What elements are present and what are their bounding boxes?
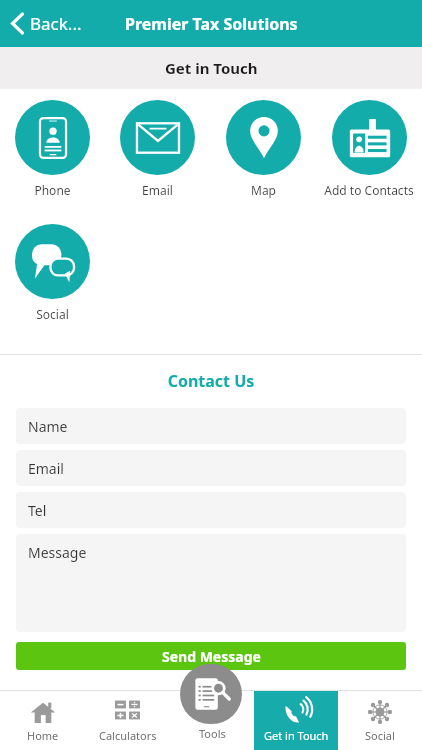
staticText: Map	[251, 182, 276, 198]
button[interactable]: Message	[16, 534, 406, 632]
button[interactable]: Get in Touch	[254, 691, 338, 750]
button[interactable]: Home	[0, 691, 85, 750]
button[interactable]: Social	[338, 691, 422, 750]
staticText: Email	[28, 459, 64, 478]
staticText: Social	[36, 306, 69, 322]
staticText: Home	[27, 728, 59, 743]
button[interactable]: Map	[210, 100, 316, 198]
staticText: Calculators	[99, 728, 157, 743]
button[interactable]: Calculators	[85, 691, 170, 750]
staticText: Contact Us	[0, 370, 422, 392]
button[interactable]: Phone	[0, 100, 105, 198]
button[interactable]: Tel	[16, 492, 406, 528]
button[interactable]: Tools	[180, 664, 242, 724]
button[interactable]: Email	[16, 450, 406, 486]
staticText: Name	[28, 417, 68, 436]
staticText: Tools	[199, 726, 226, 741]
staticText: Email	[142, 182, 173, 198]
button[interactable]: Back...	[0, 6, 94, 41]
button[interactable]: Social	[0, 224, 105, 322]
button[interactable]: Name	[16, 408, 406, 444]
staticText: Tel	[28, 501, 47, 520]
staticText: Send Message	[162, 647, 261, 666]
button[interactable]: Add to Contacts	[316, 100, 422, 198]
staticText: Get in Touch	[165, 58, 258, 78]
staticText: Phone	[34, 182, 71, 198]
staticText: Social	[365, 728, 395, 743]
staticText: Premier Tax Solutions	[125, 13, 298, 35]
button[interactable]: Email	[105, 100, 210, 198]
button[interactable]: Tools	[170, 691, 254, 750]
staticText: Get in Touch	[264, 728, 329, 743]
staticText: Message	[28, 543, 87, 562]
staticText: Add to Contacts	[324, 182, 414, 198]
button[interactable]: Send Message	[16, 642, 406, 670]
staticText: Back...	[30, 12, 82, 35]
